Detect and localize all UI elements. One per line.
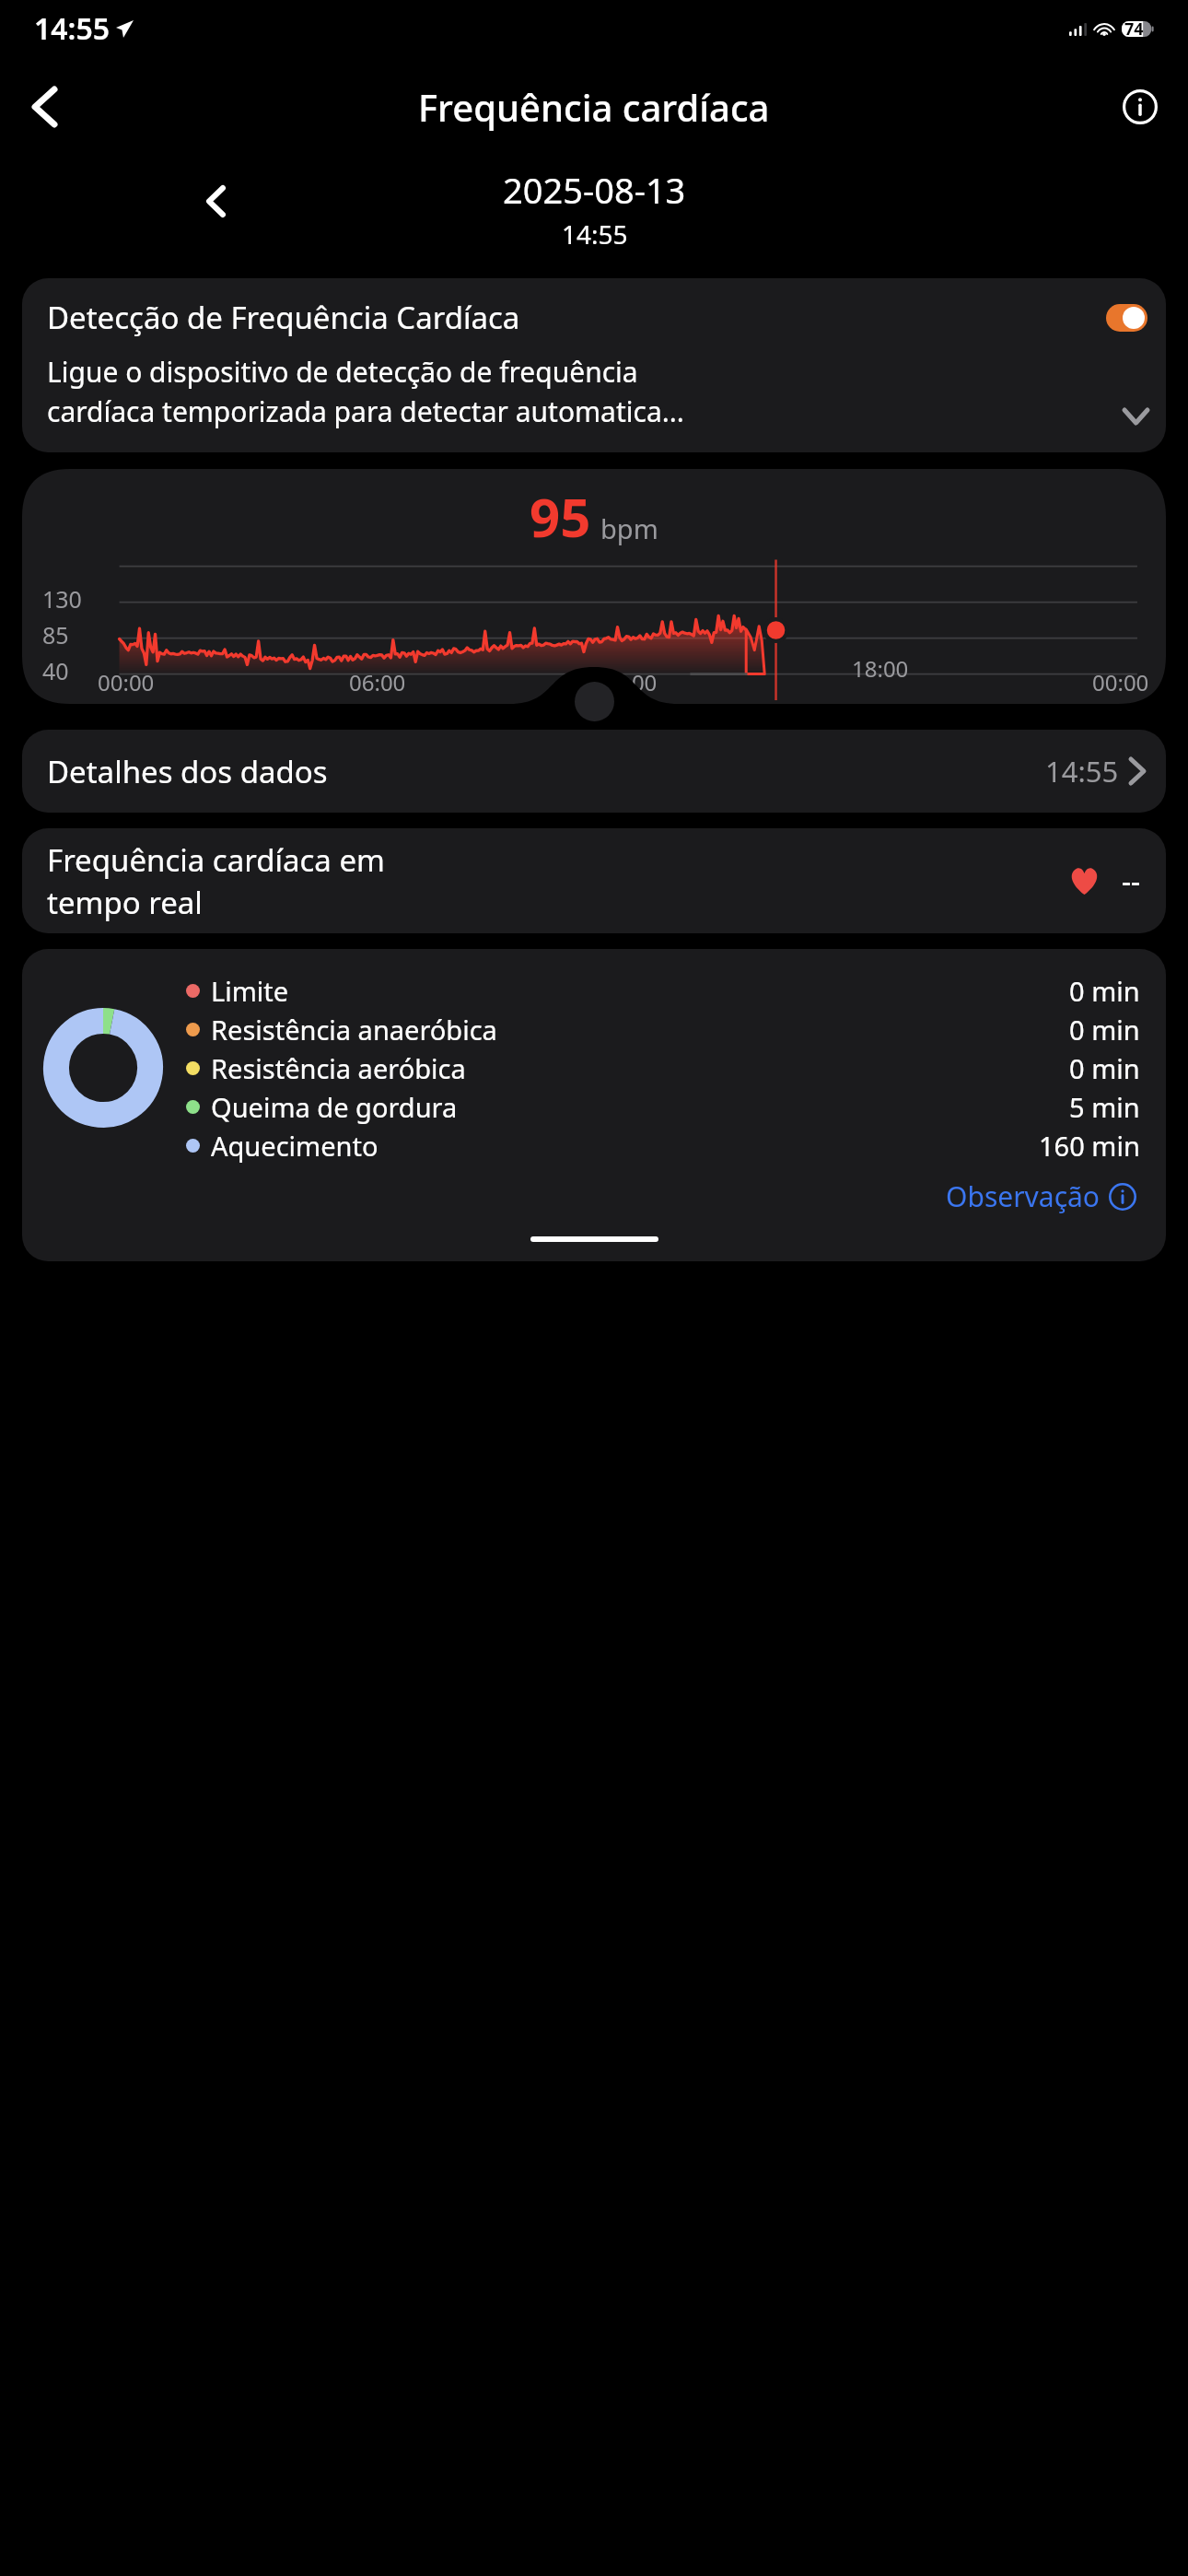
staticText: Frequência cardíaca em tempo real xyxy=(47,839,385,923)
staticText: Resistência anaeróbica xyxy=(211,1012,497,1048)
staticText: 14:55 xyxy=(1045,752,1119,790)
staticText: Observação xyxy=(946,1177,1101,1215)
staticText: 18:00 xyxy=(852,653,909,684)
button[interactable]: Heart rate detection toggle xyxy=(1106,304,1147,332)
staticText: 2025-08-13 xyxy=(503,166,686,214)
staticText: Queima de gordura xyxy=(211,1089,458,1125)
button[interactable]: 95 xyxy=(22,469,1166,704)
button[interactable]: Frequência cardíaca em tempo real xyxy=(22,828,1166,933)
staticText: 0 min xyxy=(1069,973,1140,1009)
staticText: 14:55 xyxy=(562,217,628,252)
staticText: 5 min xyxy=(1069,1089,1140,1125)
staticText: 95 xyxy=(530,480,591,553)
staticText: bpm xyxy=(600,510,658,546)
button[interactable]: Drag handle xyxy=(575,682,614,721)
button[interactable]: Limite xyxy=(22,949,1166,1261)
staticText: Ligue o dispositivo de detecção de frequ… xyxy=(47,353,684,430)
staticText: 00:00 xyxy=(1092,667,1149,697)
staticText: 0 min xyxy=(1069,1012,1140,1048)
staticText: 74 xyxy=(1124,18,1144,41)
button[interactable]: Previous day xyxy=(189,174,242,228)
staticText: Detecção de Frequência Cardíaca xyxy=(47,297,520,338)
staticText: 14:55 xyxy=(34,8,111,49)
staticText: 00:00 xyxy=(98,667,155,697)
staticText: -- xyxy=(1122,861,1140,900)
staticText: 130 xyxy=(42,583,82,615)
staticText: 0 min xyxy=(1069,1050,1140,1086)
button[interactable]: Detalhes dos dados xyxy=(22,730,1166,813)
staticText: 06:00 xyxy=(349,667,406,697)
button[interactable]: Detecção de Frequência Cardíaca xyxy=(22,278,1166,452)
staticText: Limite xyxy=(211,973,289,1009)
staticText: 12:00 xyxy=(600,667,658,697)
staticText: Frequência cardíaca xyxy=(418,82,770,132)
button[interactable]: Information xyxy=(1111,77,1170,136)
staticText: 40 xyxy=(42,655,69,686)
staticText: Resistência aeróbica xyxy=(211,1050,466,1086)
button[interactable]: Observação xyxy=(940,1172,1142,1221)
staticText: Detalhes dos dados xyxy=(47,751,328,792)
staticText: Aquecimento xyxy=(211,1128,379,1164)
button[interactable]: Back xyxy=(15,77,74,136)
staticText: 85 xyxy=(42,619,69,650)
staticText: 160 min xyxy=(1039,1128,1140,1164)
